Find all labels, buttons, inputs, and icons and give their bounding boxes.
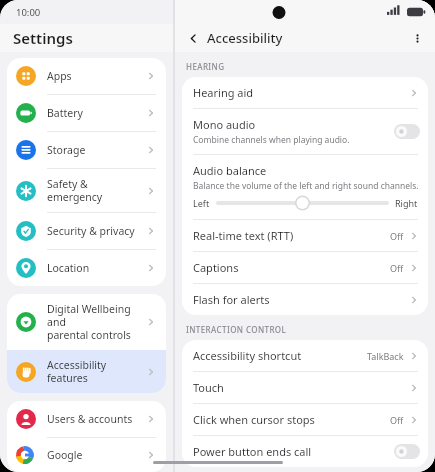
staticText: Digital Wellbeing and parental controls	[47, 302, 145, 342]
button[interactable]: Back	[183, 28, 203, 48]
staticText: Location	[47, 261, 145, 275]
button[interactable]: Accessibility shortcut	[182, 340, 428, 371]
staticText: Captions	[193, 260, 239, 275]
staticText: Accessibility shortcut	[193, 348, 302, 363]
staticText: Safety & emergency	[47, 177, 145, 204]
button[interactable]: Toggle	[394, 124, 420, 139]
staticText: Security & privacy	[47, 224, 145, 238]
staticText: 10:00	[16, 6, 41, 19]
staticText: Balance the volume of the left and right…	[193, 180, 419, 192]
button[interactable]: Mono audio	[182, 109, 428, 154]
staticText: Settings	[13, 28, 73, 48]
staticText: INTERACTION CONTROL	[186, 324, 287, 335]
staticText: Power button ends call	[193, 444, 312, 459]
button[interactable]: Flash for alerts	[182, 284, 428, 315]
button[interactable]: Location	[7, 250, 166, 286]
staticText: Battery	[47, 106, 145, 120]
staticText: Apps	[47, 69, 145, 83]
staticText: Off	[390, 414, 404, 426]
button[interactable]: More options	[407, 28, 427, 48]
staticText: Left	[193, 197, 210, 209]
button[interactable]: Power button ends call	[182, 436, 428, 467]
button[interactable]: Security & privacy	[7, 213, 166, 249]
staticText: Click when cursor stops	[193, 412, 315, 427]
staticText: Flash for alerts	[193, 292, 270, 307]
button[interactable]: Users & accounts	[7, 401, 166, 437]
staticText: Off	[390, 262, 404, 274]
staticText: Audio balance	[193, 163, 267, 178]
staticText: Mono audio	[193, 117, 256, 132]
staticText: Off	[390, 230, 404, 242]
button[interactable]: Captions	[182, 252, 428, 283]
staticText: Hearing aid	[193, 85, 254, 100]
staticText: Accessibility	[207, 29, 283, 47]
button[interactable]: Touch	[182, 372, 428, 403]
button[interactable]: Digital Wellbeing and parental controls	[7, 294, 166, 350]
button[interactable]: Accessibility features	[7, 350, 166, 393]
button[interactable]: Toggle	[394, 444, 420, 459]
button[interactable]: Audio balance	[182, 155, 428, 192]
button[interactable]: Safety & emergency	[7, 169, 166, 212]
button[interactable]: Click when cursor stops	[182, 404, 428, 435]
staticText: TalkBack	[367, 350, 404, 362]
staticText: Storage	[47, 143, 145, 157]
button[interactable]: Hearing aid	[182, 77, 428, 108]
staticText: Real-time text (RTT)	[193, 228, 294, 243]
staticText: Accessibility features	[47, 358, 145, 385]
staticText: Users & accounts	[47, 412, 145, 426]
button[interactable]: Battery	[7, 95, 166, 131]
staticText: Google	[47, 448, 145, 462]
button[interactable]: Google	[7, 438, 166, 472]
staticText: Touch	[193, 380, 224, 395]
button[interactable]: Real-time text (RTT)	[182, 220, 428, 251]
staticText: Right	[395, 197, 418, 209]
staticText: HEARING	[186, 61, 225, 72]
button[interactable]: Apps	[7, 58, 166, 94]
button[interactable]: Storage	[7, 132, 166, 168]
staticText: Combine channels when playing audio.	[193, 134, 350, 146]
